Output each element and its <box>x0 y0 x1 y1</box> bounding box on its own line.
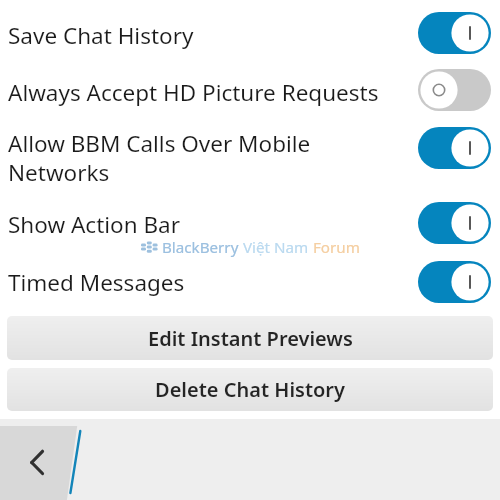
staticText: Timed Messages <box>8 267 408 298</box>
button[interactable]: Always Accept HD Picture Requests <box>0 57 500 114</box>
button[interactable]: Edit Instant Previews <box>7 316 493 360</box>
staticText: Always Accept HD Picture Requests <box>8 77 408 108</box>
button[interactable]: Save Chat History, on <box>418 12 491 54</box>
button[interactable]: Allow BBM Calls Over Mobile Networks, on <box>418 127 491 169</box>
staticText: Việt Nam <box>239 237 309 258</box>
button[interactable]: Always Accept HD Picture Requests, off <box>418 69 491 111</box>
button[interactable]: Save Chat History <box>0 0 500 57</box>
staticText: BlackBerry <box>158 237 239 258</box>
button[interactable]: Back <box>0 419 82 500</box>
staticText: Show Action Bar <box>8 209 408 240</box>
staticText: Edit Instant Previews <box>148 325 353 352</box>
button[interactable]: Allow BBM Calls Over Mobile Networks <box>0 114 500 194</box>
staticText: Allow BBM Calls Over Mobile Networks <box>8 128 408 187</box>
staticText: Delete Chat History <box>155 376 345 403</box>
button[interactable]: Show Action Bar, on <box>418 202 491 244</box>
staticText: Save Chat History <box>8 20 408 51</box>
button[interactable]: Timed Messages, on <box>418 261 491 303</box>
button[interactable]: Delete Chat History <box>7 368 493 411</box>
button[interactable]: Show Action Bar <box>0 194 500 252</box>
staticText: Forum <box>309 237 360 258</box>
button[interactable]: Timed Messages <box>0 252 500 310</box>
